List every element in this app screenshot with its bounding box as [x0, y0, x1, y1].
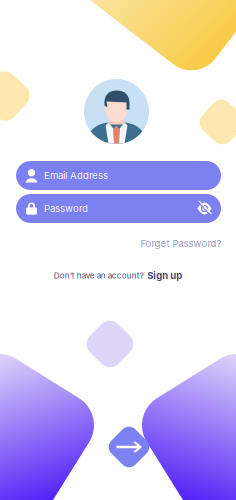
staticText: Password [44, 203, 88, 214]
button[interactable]: Password [16, 194, 221, 223]
staticText: Don't have an account? [54, 271, 144, 280]
button[interactable]: Sign in [102, 420, 156, 474]
staticText: Forget Password? [140, 238, 221, 249]
button[interactable]: Email Address [16, 161, 221, 190]
staticText: Sign up [147, 270, 182, 281]
button[interactable]: Sign up [147, 270, 182, 281]
staticText: Email Address [44, 170, 108, 181]
button[interactable]: Forget Password? [140, 237, 222, 250]
